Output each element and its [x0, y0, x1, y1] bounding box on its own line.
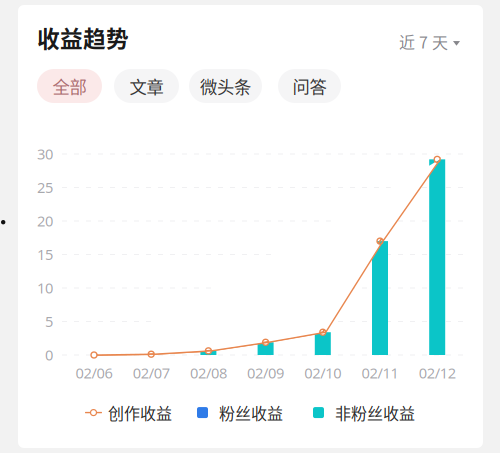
- staticText: 20: [37, 211, 53, 230]
- staticText: 全部: [52, 73, 86, 99]
- staticText: 问答: [292, 73, 326, 99]
- staticText: 25: [37, 177, 53, 197]
- staticText: 创作收益: [108, 401, 172, 424]
- staticText: 近 7 天: [399, 30, 448, 53]
- staticText: 15: [37, 244, 53, 264]
- button[interactable]: 文章: [114, 69, 179, 103]
- staticText: 02/12: [419, 363, 456, 382]
- button[interactable]: 微头条: [189, 69, 262, 103]
- staticText: 02/11: [361, 363, 398, 382]
- staticText: 粉丝收益: [219, 401, 283, 424]
- staticText: 0: [45, 345, 53, 364]
- staticText: 非粉丝收益: [335, 401, 415, 424]
- staticText: 30: [37, 144, 53, 163]
- staticText: 02/09: [247, 363, 284, 382]
- staticText: 5: [45, 311, 53, 331]
- staticText: 02/10: [304, 363, 341, 382]
- button[interactable]: 问答: [278, 69, 341, 103]
- staticText: 文章: [129, 73, 163, 99]
- staticText: 微头条: [200, 73, 251, 99]
- staticText: 10: [37, 278, 53, 297]
- button[interactable]: 近 7 天: [399, 30, 460, 53]
- staticText: 02/07: [133, 363, 170, 382]
- staticText: 02/06: [75, 363, 112, 382]
- staticText: 02/08: [190, 363, 227, 382]
- button[interactable]: 全部: [37, 69, 102, 103]
- staticText: 收益趋势: [37, 21, 129, 54]
